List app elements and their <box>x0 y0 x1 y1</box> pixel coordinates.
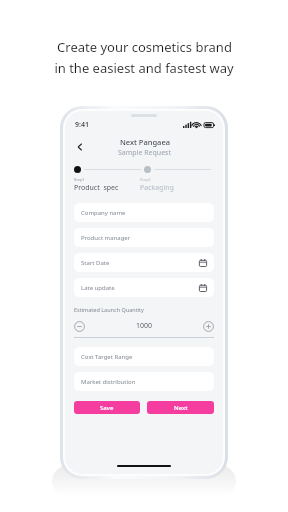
staticText: Market distribution <box>81 378 136 386</box>
button[interactable]: Cost Target Range <box>74 347 214 366</box>
staticText: 9:41 <box>75 120 89 130</box>
staticText: Sample Request <box>118 148 171 158</box>
button[interactable]: Decrease <box>74 321 85 332</box>
staticText: Step1 <box>74 177 85 182</box>
staticText: in the easiest and fastest way <box>54 59 234 77</box>
staticText: Product spec <box>74 183 119 193</box>
staticText: Estimated Launch Quantity <box>74 306 144 313</box>
staticText: Create your cosmetics brand <box>57 38 232 56</box>
staticText: Step2 <box>140 177 151 182</box>
button[interactable]: Product manager <box>74 228 214 247</box>
button[interactable]: Start Date <box>74 253 214 272</box>
button[interactable]: Increase <box>203 321 214 332</box>
button[interactable]: Company name <box>74 203 214 222</box>
button[interactable]: Back <box>71 138 89 156</box>
button[interactable]: Market distribution <box>74 372 214 391</box>
button[interactable]: Next <box>147 401 214 414</box>
staticText: Company name <box>81 209 126 217</box>
staticText: 1000 <box>136 321 153 331</box>
staticText: Next Pangaea <box>120 137 170 147</box>
button[interactable]: Save <box>74 401 140 414</box>
button[interactable]: Late update <box>74 278 214 297</box>
staticText: Start Date <box>81 259 110 267</box>
staticText: Next <box>174 404 188 412</box>
staticText: Product manager <box>81 234 131 242</box>
staticText: Late update <box>81 284 115 292</box>
staticText: Save <box>100 404 114 412</box>
staticText: Packaging <box>140 183 174 193</box>
staticText: Cost Target Range <box>81 353 133 361</box>
